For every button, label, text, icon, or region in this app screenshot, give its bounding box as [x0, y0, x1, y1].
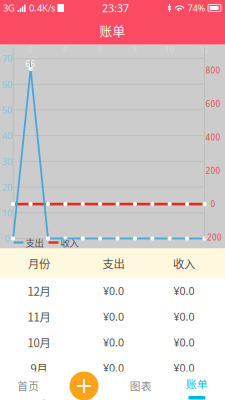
staticText: ¥0.0 — [103, 309, 124, 324]
staticText: 2 — [28, 44, 33, 55]
staticText: 11月 — [27, 308, 50, 325]
button[interactable]: 12月 — [0, 278, 225, 304]
staticText: 4 — [63, 44, 68, 55]
button[interactable]: 账单 — [169, 371, 225, 399]
staticText: 支出 — [25, 236, 43, 249]
staticText: 50 — [2, 104, 12, 116]
staticText: 6 — [98, 44, 103, 55]
button[interactable]: 8月 — [0, 381, 225, 400]
staticText: 3G — [3, 2, 15, 14]
staticText: 800 — [205, 65, 220, 76]
staticText: 23:37 — [102, 1, 129, 15]
staticText: ¥0.0 — [103, 361, 124, 375]
staticText: ¥0.0 — [103, 284, 124, 298]
staticText: 20 — [2, 181, 12, 193]
staticText: 70 — [2, 52, 12, 65]
staticText: 600 — [205, 99, 220, 109]
staticText: 收入 — [60, 236, 78, 249]
staticText: 0.4K/s — [29, 2, 55, 14]
staticText: 账单 — [99, 21, 125, 39]
staticText: 首页 — [17, 378, 39, 393]
staticText: 66 — [26, 58, 36, 69]
staticText: 图表 — [130, 378, 152, 393]
staticText: -200 — [204, 232, 222, 243]
staticText: 12 — [199, 44, 209, 55]
staticText: 支出 — [102, 255, 124, 271]
staticText: 74% — [187, 2, 205, 14]
button[interactable]: 图表 — [112, 371, 169, 399]
staticText: 8月 — [30, 385, 47, 400]
staticText: 200 — [205, 165, 220, 176]
staticText: 月份 — [28, 255, 50, 271]
staticText: ¥0.0 — [173, 335, 194, 349]
staticText: 40 — [2, 129, 12, 142]
staticText: ¥0.0 — [173, 284, 194, 298]
staticText: 10 — [2, 207, 12, 219]
staticText: 60 — [2, 78, 12, 90]
staticText: 10 — [165, 44, 175, 55]
staticText: 0 — [4, 232, 9, 245]
staticText: 9月 — [30, 360, 47, 376]
staticText: 8 — [132, 44, 137, 55]
button[interactable]: 首页 — [0, 371, 56, 399]
staticText: ¥0.0 — [173, 387, 194, 400]
button[interactable]: 11月 — [0, 304, 225, 329]
button[interactable]: Add record — [69, 371, 98, 400]
staticText: ¥0.0 — [173, 309, 194, 324]
staticText: 收入 — [173, 255, 195, 271]
staticText: 10月 — [27, 334, 50, 350]
staticText: 12月 — [27, 283, 50, 299]
staticText: ¥0.0 — [103, 335, 124, 349]
staticText: ¥0.0 — [173, 361, 194, 375]
staticText: 账单 — [186, 376, 208, 391]
button[interactable]: 10月 — [0, 329, 225, 355]
staticText: 400 — [205, 132, 220, 143]
staticText: 30 — [2, 155, 12, 168]
staticText: 0 — [210, 199, 215, 209]
button[interactable]: 9月 — [0, 355, 225, 381]
